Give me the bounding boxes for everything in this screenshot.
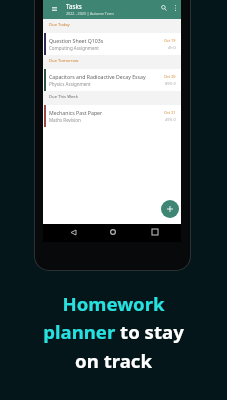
staticText: Mechanics Past Paper xyxy=(49,109,103,116)
staticText: Oct 21 xyxy=(164,110,176,115)
button[interactable]: Home xyxy=(106,225,120,239)
button[interactable]: Add task xyxy=(161,200,179,218)
staticText: Oct 20 xyxy=(164,74,176,79)
button[interactable]: Recent apps xyxy=(148,225,162,239)
button[interactable]: Search xyxy=(157,0,170,16)
staticText: Maths Revision xyxy=(49,117,81,123)
staticText: 85% 0 xyxy=(165,81,176,86)
staticText: Computing Assignment xyxy=(49,45,99,51)
staticText: Due Tomorrow xyxy=(49,58,79,64)
button[interactable]: Back xyxy=(66,225,80,239)
staticText: 45% 0 xyxy=(165,117,176,122)
staticText: Due Today xyxy=(49,22,70,28)
button[interactable]: Capacitors and Radioactive Decay Essay xyxy=(43,69,181,91)
staticText: Oct 19 xyxy=(164,38,176,43)
staticText: Tasks xyxy=(66,2,82,10)
staticText: Question Sheet Q103s xyxy=(49,37,104,44)
button[interactable]: Mechanics Past Paper xyxy=(43,105,181,127)
staticText: Capacitors and Radioactive Decay Essay xyxy=(49,73,146,80)
button[interactable]: More options xyxy=(170,0,181,16)
staticText: 2022 - 2023 | Autumn Term xyxy=(66,11,114,16)
button[interactable]: Question Sheet Q103s xyxy=(43,33,181,55)
staticText: Physics Assignment xyxy=(49,81,91,87)
staticText: 4h 0 xyxy=(168,45,176,50)
button[interactable]: Open navigation menu xyxy=(43,0,66,17)
staticText: Due This Week xyxy=(49,94,78,100)
staticText: Homework planner to stay on track xyxy=(0,291,227,374)
